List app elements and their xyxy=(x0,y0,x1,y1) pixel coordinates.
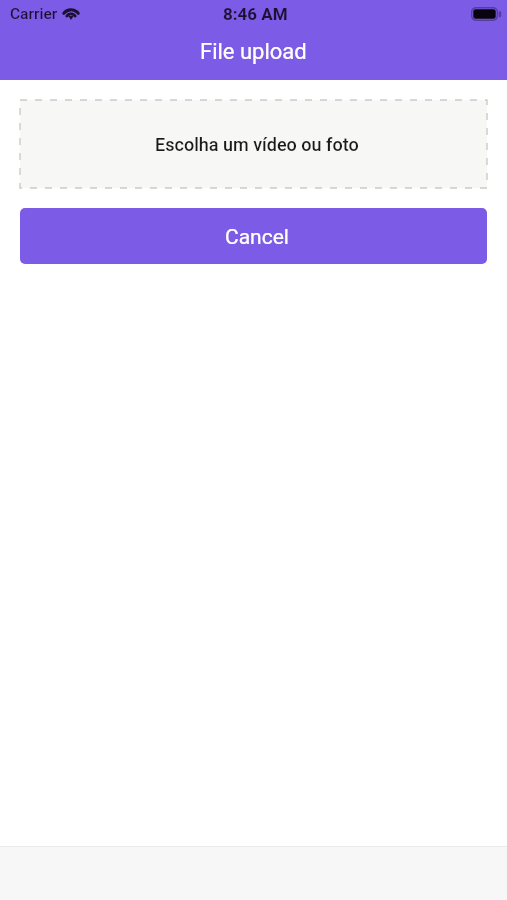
staticText: Cancel xyxy=(225,225,289,250)
button[interactable]: Escolha um vídeo ou foto xyxy=(20,100,487,188)
staticText: 8:46 AM xyxy=(223,4,288,24)
staticText: Carrier xyxy=(10,5,58,23)
other: Battery full xyxy=(471,7,501,21)
other: Wi-Fi signal xyxy=(61,1,81,19)
staticText: Escolha um vídeo ou foto xyxy=(155,134,359,155)
button[interactable]: Cancel xyxy=(20,208,487,264)
staticText: File upload xyxy=(200,39,307,65)
